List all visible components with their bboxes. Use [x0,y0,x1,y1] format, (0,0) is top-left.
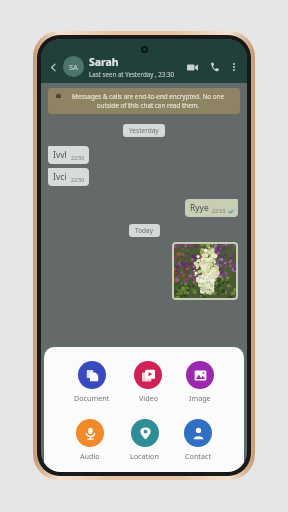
staticText: Ryye [190,202,209,214]
button[interactable]: Messages & calls are end-to-end encrypte… [48,88,240,114]
button[interactable]: Video call [182,57,202,77]
button[interactable]: Video [130,359,166,405]
button[interactable]: Document [70,359,114,405]
staticText: Ivvl [53,149,67,161]
button[interactable]: Ivvl [48,146,89,164]
staticText: Video [139,393,158,403]
staticText: 22:53 [212,207,226,214]
staticText: Yesterday [129,126,159,135]
button[interactable]: Ryye [185,199,238,217]
button[interactable]: Ivci [48,168,89,186]
staticText: Last seen at Yesterday , 23:30 [89,70,175,78]
button[interactable]: Profile photo [63,56,84,77]
staticText: Today [135,226,154,235]
button[interactable]: Voice call [205,57,225,77]
button[interactable]: Audio [72,417,108,463]
button[interactable]: Contact [180,417,216,463]
staticText: Contact [185,451,212,461]
button[interactable]: Image [182,359,218,405]
button[interactable]: More options [226,59,242,75]
staticText: Sarah [89,55,119,69]
button[interactable]: Photo message [174,244,236,298]
staticText: SA [69,62,79,72]
staticText: Document [74,393,110,403]
staticText: 22:50 [71,176,85,183]
button[interactable]: Location [126,417,163,463]
staticText: Ivci [53,171,67,183]
staticText: Location [130,451,159,461]
staticText: 22:50 [71,154,85,161]
staticText: Audio [80,451,100,461]
staticText: Image [189,393,211,403]
button[interactable]: Back [45,59,61,75]
staticText: Messages & calls are end-to-end encrypte… [64,92,232,110]
